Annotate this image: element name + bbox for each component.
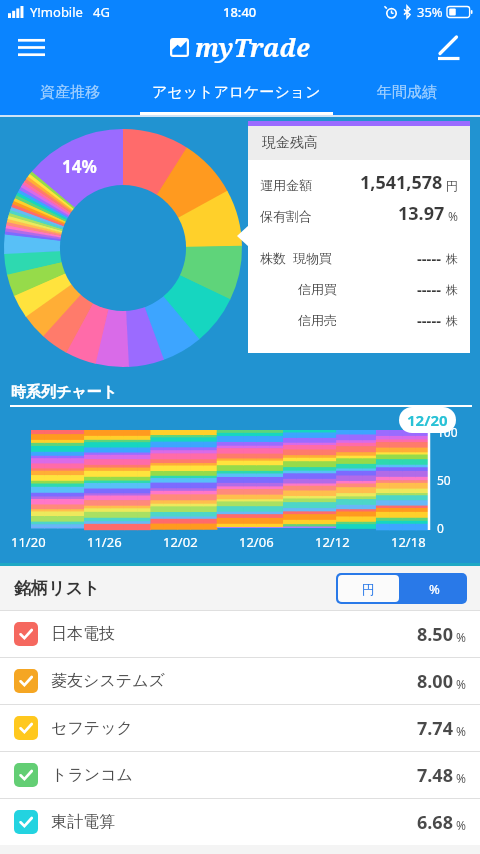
staticText: 時系列チャート	[11, 383, 118, 402]
staticText: 1,541,578	[360, 170, 443, 195]
staticText: 12/02	[163, 533, 198, 551]
staticText: 現金残高	[262, 134, 318, 152]
staticText: 12/12	[315, 533, 350, 551]
staticText: 14%	[62, 155, 97, 178]
button[interactable]: 日本電技	[0, 611, 480, 657]
button[interactable]: Edit	[426, 25, 470, 69]
staticText: 株	[446, 282, 458, 297]
staticText: 12/20	[407, 410, 448, 430]
staticText: 銘柄リスト	[14, 578, 101, 599]
button[interactable]: %	[401, 573, 467, 604]
staticText: 運用金額	[260, 177, 312, 193]
button[interactable]: 東計電算	[0, 799, 480, 845]
button[interactable]: 菱友システムズ	[0, 658, 480, 704]
button[interactable]: 年間成績	[333, 70, 480, 115]
staticText: 0	[437, 520, 444, 536]
staticText: %	[456, 723, 466, 739]
staticText: -----	[417, 248, 442, 268]
staticText: %	[456, 770, 466, 786]
staticText: 東計電算	[51, 812, 115, 832]
staticText: 6.68	[417, 810, 453, 835]
staticText: セフテック	[51, 718, 133, 738]
staticText: 資産推移	[40, 83, 100, 102]
staticText: 8.00	[417, 669, 453, 694]
staticText: myTrade	[195, 30, 310, 64]
staticText: %	[448, 208, 458, 224]
staticText: 年間成績	[377, 83, 437, 102]
staticText: 保有割合	[260, 208, 312, 224]
staticText: Y!mobile	[30, 3, 83, 21]
button[interactable]: 円	[338, 575, 399, 602]
button[interactable]: Menu	[8, 24, 54, 70]
staticText: 11/26	[87, 533, 122, 551]
staticText: 信用買	[298, 281, 337, 297]
staticText: 7.48	[417, 763, 453, 788]
button[interactable]: 資産推移	[0, 70, 140, 115]
staticText: 8.50	[417, 622, 453, 647]
staticText: -----	[417, 310, 442, 330]
staticText: 12/06	[239, 533, 274, 551]
staticText: 株	[446, 313, 458, 328]
staticText: 11/20	[11, 533, 46, 551]
staticText: 株数	[260, 250, 286, 266]
staticText: %	[456, 817, 466, 833]
staticText: 日本電技	[51, 624, 115, 644]
staticText: 35%	[417, 3, 443, 21]
staticText: 50	[437, 472, 451, 488]
staticText: 現物買	[293, 250, 332, 266]
staticText: 株	[446, 251, 458, 266]
staticText: 100	[437, 424, 458, 440]
staticText: トランコム	[51, 765, 133, 785]
staticText: 信用売	[298, 312, 337, 328]
staticText: 18:40	[223, 3, 257, 21]
staticText: 13.97	[398, 201, 445, 226]
staticText: 菱友システムズ	[51, 671, 165, 691]
staticText: %	[429, 580, 440, 598]
staticText: 円	[446, 178, 458, 193]
staticText: 7.74	[417, 716, 453, 741]
staticText: 12/18	[391, 533, 426, 551]
staticText: %	[456, 676, 466, 692]
button[interactable]: セフテック	[0, 705, 480, 751]
staticText: 円	[362, 581, 375, 597]
staticText: %	[456, 629, 466, 645]
button[interactable]: アセットアロケーション	[140, 70, 333, 115]
staticText: アセットアロケーション	[152, 83, 321, 102]
staticText: 4G	[93, 3, 110, 21]
staticText: -----	[417, 279, 442, 299]
button[interactable]: トランコム	[0, 752, 480, 798]
